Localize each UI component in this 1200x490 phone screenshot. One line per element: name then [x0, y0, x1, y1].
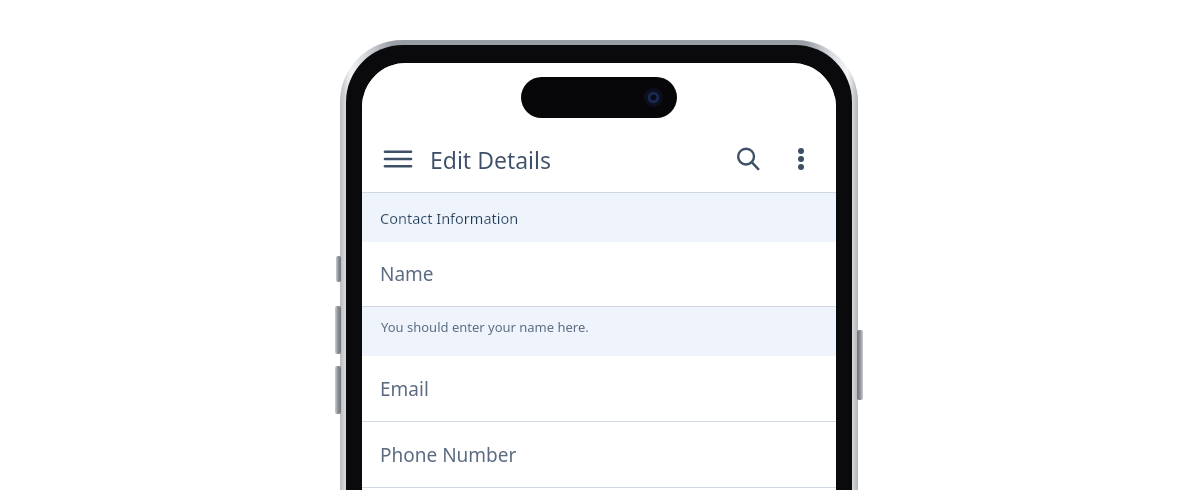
staticText: Edit Details [430, 144, 552, 175]
button[interactable]: Phone Number [362, 422, 836, 487]
staticText: Email [380, 376, 429, 402]
button[interactable]: Contact Information [362, 193, 836, 242]
staticText: Name [380, 261, 434, 287]
button[interactable]: Search [724, 135, 772, 183]
button[interactable]: More options [778, 136, 824, 182]
staticText: You should enter your name here. [381, 318, 589, 336]
staticText: Contact Information [380, 208, 519, 228]
button[interactable]: Open navigation menu [376, 137, 420, 181]
button[interactable]: Email [362, 356, 836, 421]
staticText: Phone Number [380, 442, 517, 468]
button[interactable]: Name [362, 242, 836, 306]
